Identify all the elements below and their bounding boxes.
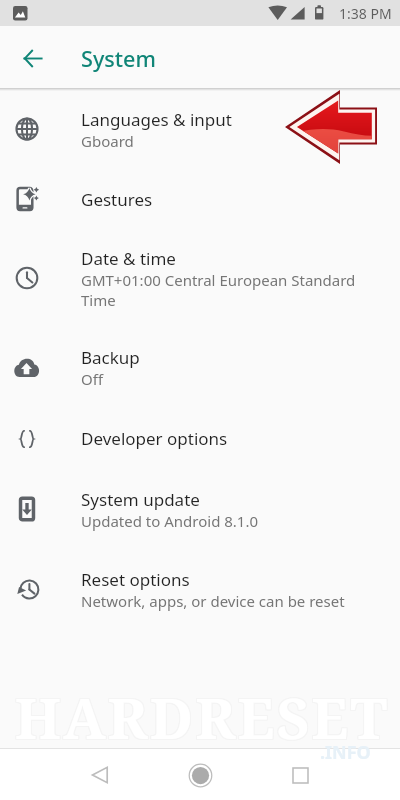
staticText: HARDRESET — [15, 678, 390, 754]
staticText: HARDRESET — [16, 679, 391, 755]
button[interactable]: Navigate up — [9, 36, 53, 80]
staticText: Network, apps, or device can be reset — [81, 591, 345, 611]
staticText: HARDRESET — [16, 680, 391, 756]
staticText: Languages & input — [81, 108, 232, 131]
staticText: Time — [81, 290, 116, 310]
staticText: Backup — [81, 346, 140, 369]
button[interactable]: Recents — [276, 748, 324, 800]
button[interactable]: Home — [176, 748, 224, 800]
staticText: HARDRESET — [14, 680, 389, 756]
staticText: Updated to Android 8.1.0 — [81, 511, 259, 531]
staticText: Date & time — [81, 247, 176, 270]
staticText: HARDRESET — [16, 678, 391, 754]
button[interactable]: Reset options — [0, 549, 400, 629]
staticText: Off — [81, 369, 104, 389]
button[interactable]: Backup — [0, 327, 400, 408]
button[interactable]: System update — [0, 469, 400, 549]
button[interactable]: Gestures — [0, 169, 400, 229]
staticText: GMT+01:00 Central European Standard — [81, 270, 356, 290]
staticText: HARDRESET — [15, 680, 390, 756]
staticText: System — [81, 44, 156, 73]
staticText: .INFO — [320, 740, 371, 765]
staticText: System update — [81, 488, 200, 511]
staticText: HARDRESET — [14, 679, 389, 755]
staticText: HARDRESET — [15, 679, 390, 755]
staticText: HARDRESET — [14, 678, 389, 754]
staticText: Developer options — [81, 427, 228, 450]
staticText: Reset options — [81, 568, 190, 591]
button[interactable]: Developer options — [0, 408, 400, 469]
staticText: 1:38 PM — [339, 4, 392, 23]
button[interactable]: Languages & input — [0, 89, 400, 169]
button[interactable]: Back — [76, 748, 124, 800]
staticText: Gboard — [81, 131, 134, 151]
staticText: Gestures — [81, 188, 153, 211]
button[interactable]: Date & time — [0, 229, 400, 327]
